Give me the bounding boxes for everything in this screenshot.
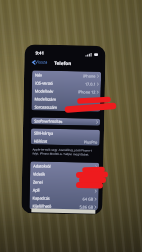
staticText: Sorozatszám <box>34 104 57 110</box>
staticText: Modellszám <box>35 96 57 102</box>
staticText: 17.0.1 <box>85 81 96 87</box>
staticText: Vissza <box>35 59 47 66</box>
staticText: Apple-termék vagy -hozzáférés, jóvá iPho… <box>32 147 97 157</box>
button[interactable]: Név <box>32 70 101 80</box>
button[interactable]: Videók <box>30 169 99 179</box>
staticText: Videók <box>33 171 46 177</box>
button[interactable]: Apli <box>30 185 99 195</box>
other: Status icons <box>85 52 99 57</box>
staticText: Kijelölhető <box>32 203 51 209</box>
staticText: Hálózat <box>34 138 48 144</box>
staticText: iPhone 12 <box>78 89 96 95</box>
staticText: Modellnév <box>35 88 54 94</box>
staticText: Zenei <box>33 179 43 185</box>
staticText: Név <box>35 72 42 77</box>
staticText: PlusPro <box>84 139 98 145</box>
button[interactable]: Modellnév <box>32 86 101 96</box>
staticText: Telefon <box>54 60 71 66</box>
button[interactable]: Szoftverfrissítés <box>31 117 100 126</box>
staticText: 64 GB <box>83 196 94 202</box>
staticText: MGJ83 <box>83 97 96 103</box>
staticText: Adatokról <box>33 163 51 169</box>
button[interactable]: Vissza <box>30 57 49 68</box>
staticText: Apli <box>33 187 40 192</box>
button[interactable]: Hálózat <box>31 136 100 146</box>
staticText: 5,86 GB <box>79 204 93 210</box>
staticText: iPhone <box>83 73 96 79</box>
staticText: Szoftverfrissítés <box>34 118 63 124</box>
staticText: 9:41 <box>35 50 45 57</box>
staticText: Kapacitás <box>33 195 51 201</box>
button[interactable]: iOS-verzió <box>32 78 101 88</box>
button[interactable]: Sorozatszám <box>31 102 100 112</box>
button[interactable]: Kijelölhető <box>29 201 98 211</box>
button[interactable]: Kapacitás <box>30 193 99 203</box>
staticText: iOS-verzió <box>35 80 53 86</box>
staticText: SIM-kártya <box>34 130 54 136</box>
button[interactable]: Zenei <box>30 177 99 187</box>
button[interactable]: Modellszám <box>31 94 101 104</box>
button[interactable]: SIM-kártya <box>31 128 100 138</box>
button[interactable]: Adatokról <box>30 161 99 171</box>
